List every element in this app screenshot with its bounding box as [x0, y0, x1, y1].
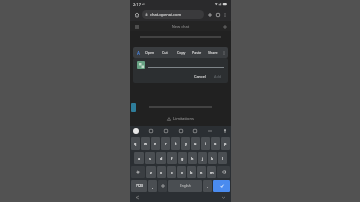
button[interactable]: w: [141, 137, 150, 150]
button[interactable]: j: [198, 152, 207, 164]
staticText: q: [134, 141, 137, 146]
staticText: A: [137, 50, 140, 56]
button[interactable]: o: [211, 137, 220, 150]
staticText: p: [224, 141, 227, 146]
staticText: ?123: [136, 184, 143, 188]
staticText: h: [191, 156, 194, 161]
staticText: y: [185, 141, 187, 146]
button[interactable]: Share: [205, 47, 221, 58]
staticText: i: [205, 141, 206, 146]
button[interactable]: y: [181, 137, 190, 150]
button[interactable]: l: [218, 152, 227, 164]
button[interactable]: i: [201, 137, 210, 150]
button[interactable]: t: [171, 137, 180, 150]
button[interactable]: v: [177, 166, 186, 178]
staticText: Share: [208, 50, 218, 55]
button[interactable]: Menu: [133, 23, 140, 30]
staticText: Limitations: [173, 116, 194, 121]
button[interactable]: Cancel: [192, 73, 208, 80]
button[interactable]: k: [208, 152, 217, 164]
staticText: e: [154, 141, 157, 146]
button[interactable]: p: [221, 137, 230, 150]
button[interactable]: Cut: [157, 47, 173, 58]
button[interactable]: Keyboard tool 1: [163, 128, 169, 134]
staticText: b: [190, 170, 193, 175]
button[interactable]: .: [203, 180, 212, 192]
button[interactable]: Copy: [173, 47, 189, 58]
staticText: Cut: [162, 50, 168, 55]
button[interactable]: Emoji: [158, 180, 167, 192]
button[interactable]: r: [161, 137, 170, 150]
staticText: t: [175, 141, 177, 146]
staticText: Cancel: [194, 74, 206, 79]
button[interactable]: Collapse: [207, 128, 213, 134]
staticText: x: [160, 170, 163, 175]
button[interactable]: Google: [133, 128, 139, 134]
button[interactable]: Translate: [135, 49, 142, 56]
staticText: .: [207, 184, 209, 189]
staticText: Copy: [177, 50, 186, 55]
button[interactable]: Back: [135, 195, 140, 200]
staticText: l: [222, 156, 223, 161]
button[interactable]: Icon: [137, 61, 145, 69]
button[interactable]: Keyboard tool 3: [192, 128, 198, 134]
staticText: c: [171, 170, 173, 175]
button[interactable]: New tab: [206, 11, 214, 19]
button[interactable]: n: [197, 166, 206, 178]
button[interactable]: x: [157, 166, 166, 178]
button[interactable]: u: [191, 137, 200, 150]
staticText: o: [214, 141, 217, 146]
staticText: Paste: [192, 50, 202, 55]
button[interactable]: More options: [222, 12, 228, 18]
staticText: k: [211, 156, 214, 161]
staticText: n: [200, 170, 203, 175]
staticText: v: [181, 170, 183, 175]
button[interactable]: Home: [133, 11, 141, 19]
staticText: s: [149, 156, 151, 161]
button[interactable]: More: [221, 47, 227, 58]
button[interactable]: Add: [212, 73, 224, 80]
button[interactable]: d: [156, 152, 166, 164]
button[interactable]: Shift: [131, 166, 145, 178]
button[interactable]: Keyboard tool 2: [178, 128, 184, 134]
staticText: d: [160, 156, 163, 161]
staticText: Add: [214, 74, 222, 79]
button[interactable]: Enter: [213, 180, 230, 192]
button[interactable]: a: [134, 152, 144, 164]
button[interactable]: z: [146, 166, 156, 178]
button[interactable]: Backspace: [217, 166, 230, 178]
staticText: g: [181, 156, 184, 161]
staticText: f: [171, 156, 173, 161]
button[interactable]: Tabs: [214, 11, 222, 19]
button[interactable]: e: [151, 137, 160, 150]
button[interactable]: h: [188, 152, 197, 164]
staticText: English: [180, 184, 191, 188]
button[interactable]: New chat: [221, 23, 228, 30]
button[interactable]: chat.openai.com: [142, 10, 204, 19]
button[interactable]: b: [187, 166, 196, 178]
button[interactable]: f: [167, 152, 177, 164]
staticText: 2:17: [133, 2, 141, 7]
staticText: a: [138, 156, 141, 161]
button[interactable]: s: [145, 152, 155, 164]
button[interactable]: m: [207, 166, 216, 178]
button[interactable]: Keyboard tool 0: [148, 128, 154, 134]
staticText: chat.openai.com: [150, 12, 182, 17]
staticText: ,: [152, 184, 154, 189]
button[interactable]: Paste: [189, 47, 205, 58]
button[interactable]: Open: [142, 47, 157, 58]
staticText: New chat: [140, 24, 221, 29]
button[interactable]: Voice input: [222, 128, 228, 134]
staticText: u: [194, 141, 197, 146]
button[interactable]: Hide keyboard: [221, 195, 226, 200]
staticText: m: [210, 170, 214, 175]
staticText: j: [202, 156, 203, 161]
button[interactable]: Limitations: [130, 114, 231, 123]
button[interactable]: q: [131, 137, 140, 150]
button[interactable]: English: [168, 180, 202, 192]
button[interactable]: ?123: [131, 180, 147, 192]
staticText: Open: [145, 50, 155, 55]
button[interactable]: ,: [148, 180, 157, 192]
button[interactable]: g: [178, 152, 187, 164]
button[interactable]: c: [167, 166, 176, 178]
